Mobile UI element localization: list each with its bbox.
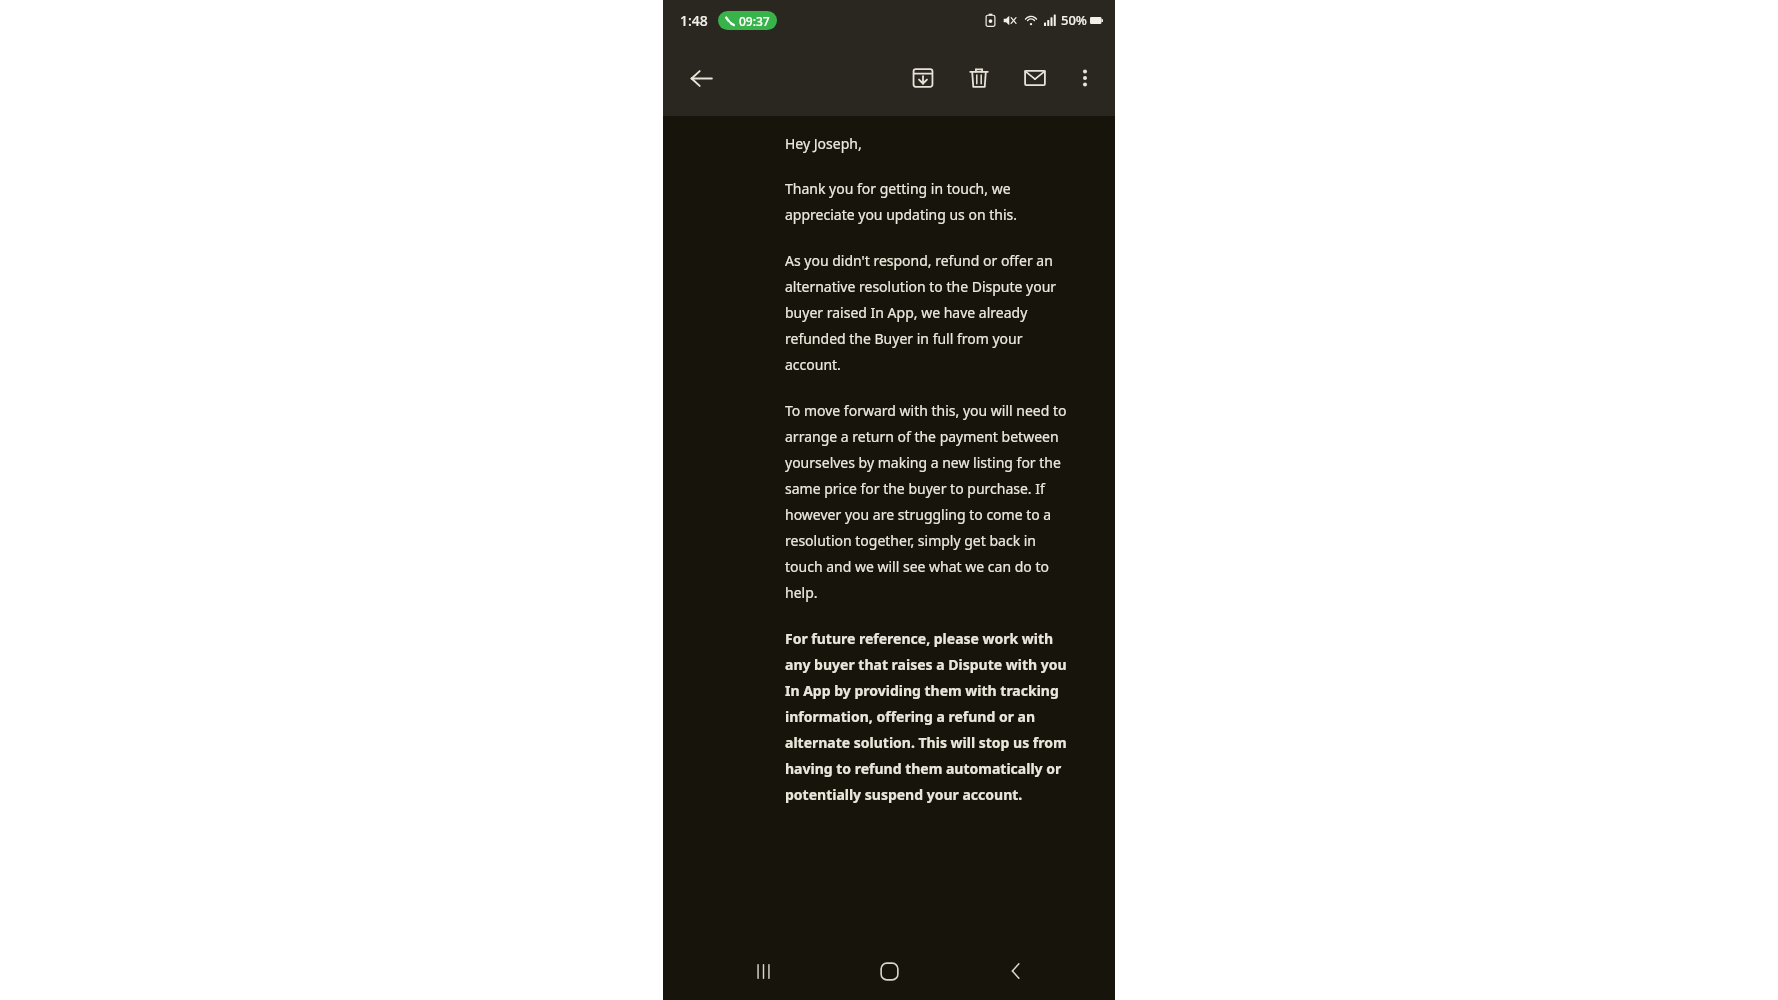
button[interactable]: More options	[1063, 56, 1107, 100]
staticText: 1:48	[680, 11, 708, 30]
staticText: As you didn't respond, refund or offer a…	[785, 251, 1075, 375]
staticText: Hey Joseph,	[785, 134, 1075, 153]
button[interactable]: Back	[989, 944, 1043, 998]
staticText: 50%	[1061, 11, 1087, 29]
button[interactable]: Recent apps	[736, 944, 790, 998]
staticText: To move forward with this, you will need…	[785, 401, 1075, 603]
staticText: Thank you for getting in touch, we appre…	[785, 179, 1075, 225]
button[interactable]: Back	[677, 54, 725, 102]
staticText: For future reference, please work with a…	[785, 629, 1075, 805]
button[interactable]: Delete	[957, 56, 1001, 100]
button[interactable]: Mark as unread	[1013, 56, 1057, 100]
button[interactable]: Archive	[901, 56, 945, 100]
staticText: 09:37	[739, 13, 770, 29]
button[interactable]: Home	[862, 944, 916, 998]
